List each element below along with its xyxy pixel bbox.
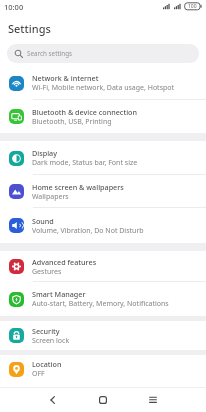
- staticText: Location: [32, 359, 62, 369]
- staticText: Volume, Vibration, Do Not Disturb: [32, 226, 144, 236]
- staticText: Wallpapers: [32, 192, 69, 202]
- staticText: Network & internet: [32, 73, 99, 83]
- staticText: Dark mode, Status bar, Font size: [32, 158, 138, 168]
- staticText: Gestures: [32, 267, 62, 277]
- staticText: Settings: [8, 21, 51, 36]
- button[interactable]: Security: [0, 321, 206, 350]
- staticText: Screen lock: [32, 336, 70, 346]
- staticText: Wi-Fi, Mobile network, Data usage, Hotsp…: [32, 83, 175, 93]
- button[interactable]: [128, 387, 178, 412]
- button[interactable]: Network & internet: [0, 66, 206, 100]
- button[interactable]: Display: [0, 141, 206, 175]
- button[interactable]: Smart Manager: [0, 282, 206, 316]
- staticText: Bluetooth & device connection: [32, 107, 137, 117]
- button[interactable]: Advanced features: [0, 251, 206, 282]
- button[interactable]: Location: [0, 355, 206, 383]
- staticText: Smart Manager: [32, 289, 86, 299]
- staticText: Advanced features: [32, 257, 97, 267]
- button[interactable]: [78, 387, 128, 412]
- staticText: 100: [188, 3, 197, 10]
- staticText: Security: [32, 326, 60, 336]
- staticText: Sound: [32, 216, 54, 226]
- staticText: Auto-start, Battery, Memory, Notificatio…: [32, 299, 169, 309]
- staticText: Search settings: [27, 49, 73, 58]
- staticText: Bluetooth, USB, Printing: [32, 117, 112, 127]
- button[interactable]: Bluetooth & device connection: [0, 100, 206, 133]
- staticText: Display: [32, 148, 57, 158]
- staticText: OFF: [32, 369, 45, 379]
- staticText: 10:00: [4, 2, 24, 12]
- button[interactable]: [28, 387, 78, 412]
- button[interactable]: Home screen & wallpapers: [0, 175, 206, 208]
- button[interactable]: Search settings: [7, 44, 199, 63]
- staticText: Home screen & wallpapers: [32, 182, 124, 192]
- button[interactable]: Sound: [0, 208, 206, 243]
